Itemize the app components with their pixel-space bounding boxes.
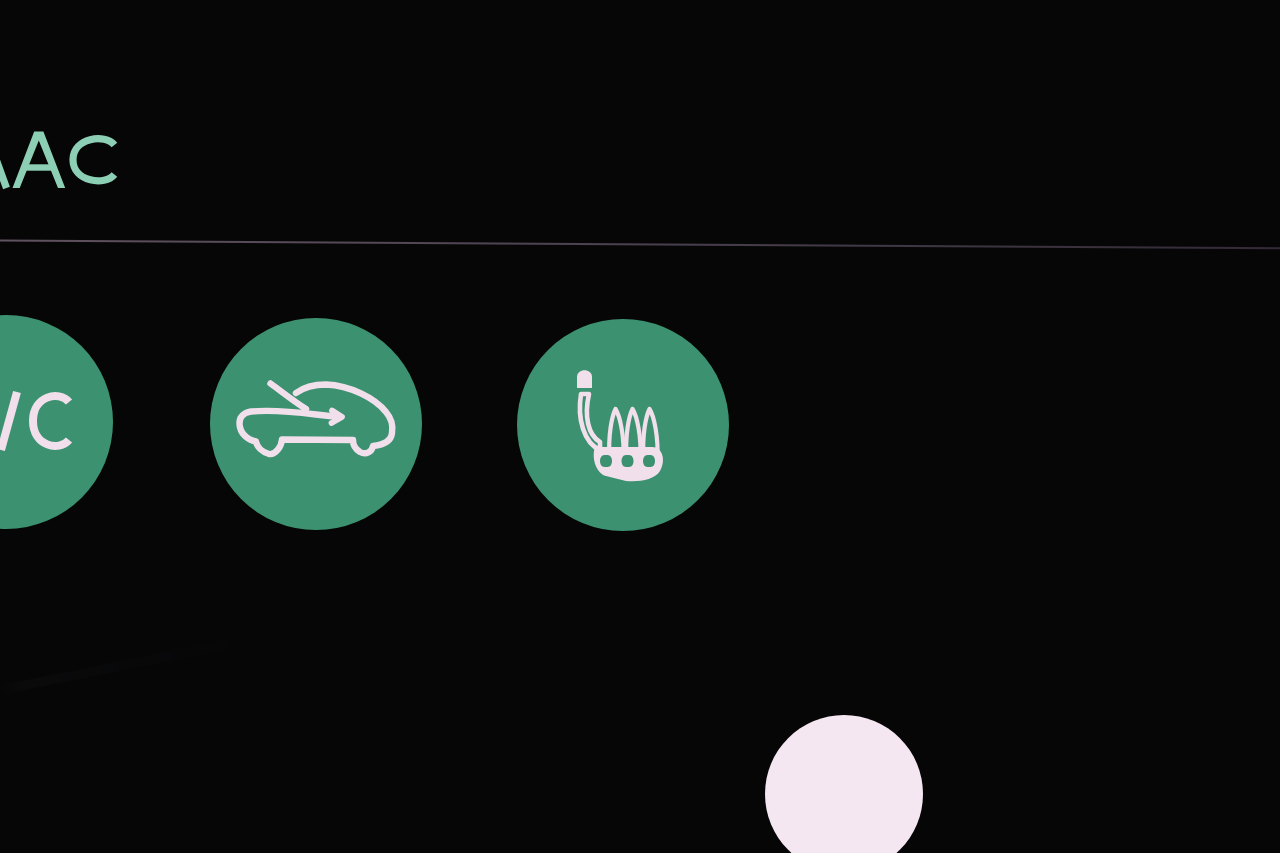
button[interactable]: Seat heater (517, 319, 729, 531)
other: HVAC (0, 0, 1280, 252)
button[interactable]: Fan speed (765, 715, 923, 853)
button[interactable]: Air recirculation (210, 318, 422, 530)
button[interactable]: Air conditioning (0, 315, 113, 529)
